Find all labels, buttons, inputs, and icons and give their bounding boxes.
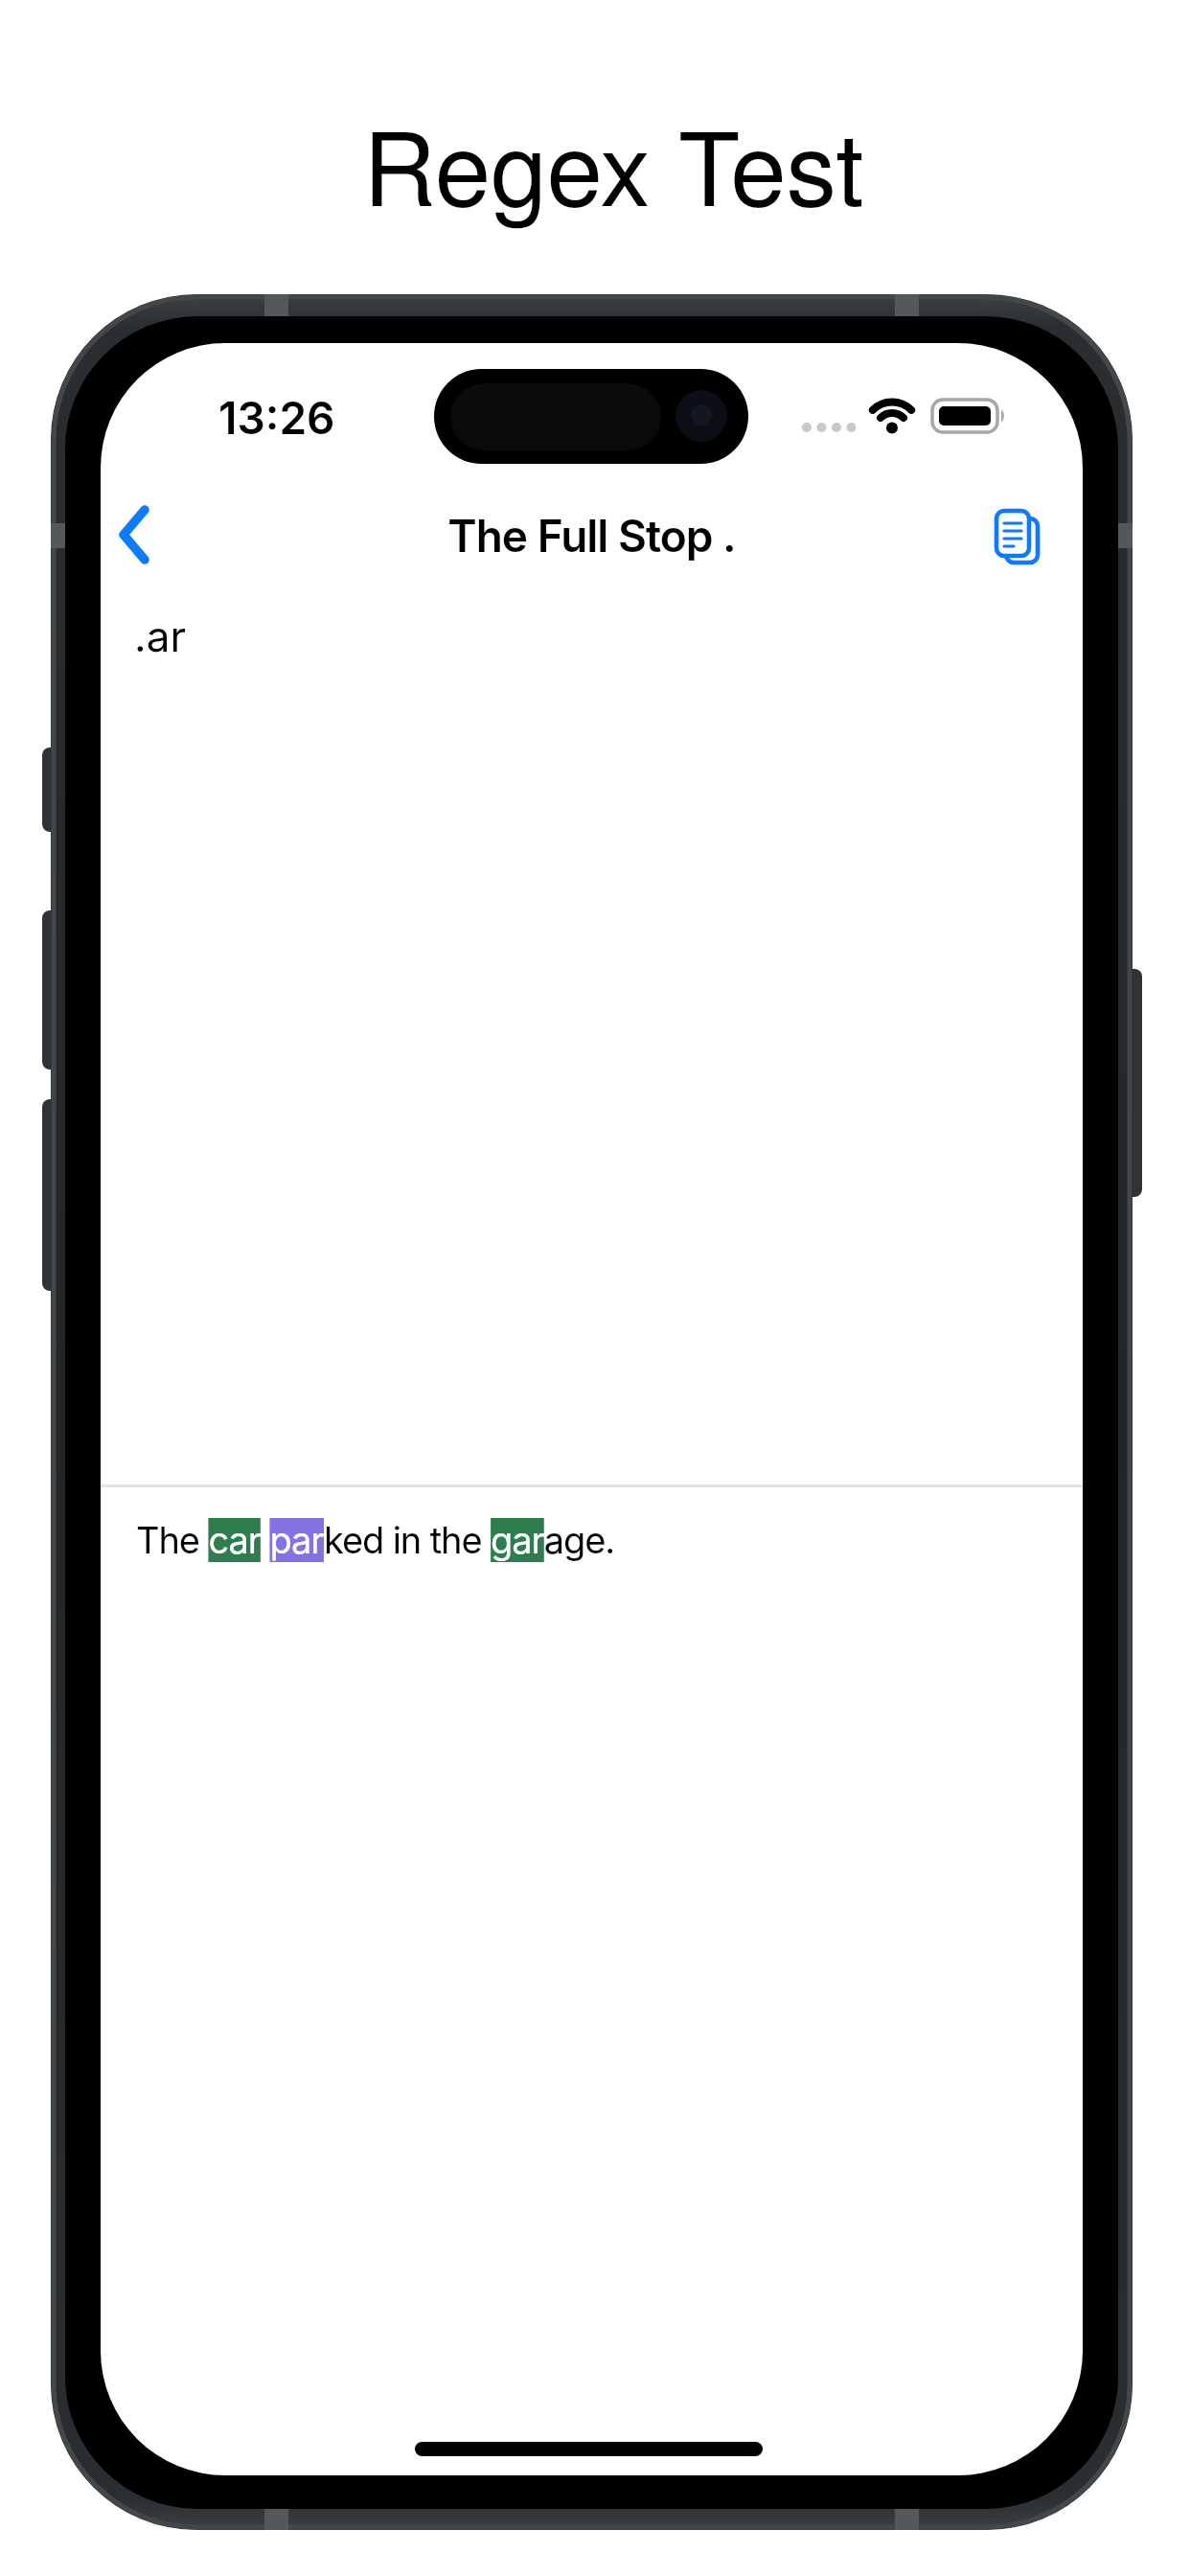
- staticText: Regex Test: [363, 90, 864, 234]
- staticText: The Full Stop .: [447, 509, 736, 563]
- staticText: 13:26: [218, 391, 335, 445]
- staticText: .ar: [134, 610, 186, 661]
- button[interactable]: [107, 494, 169, 575]
- button[interactable]: [979, 494, 1052, 575]
- staticText: The car parked in the garage.: [136, 1518, 615, 1562]
- button[interactable]: [101, 586, 1083, 673]
